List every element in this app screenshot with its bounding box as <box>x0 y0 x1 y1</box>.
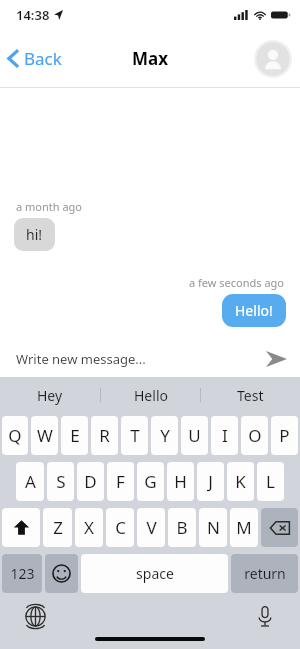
button[interactable]: space <box>81 554 228 593</box>
button[interactable]: H <box>167 462 194 501</box>
button[interactable]: Send <box>261 344 291 374</box>
button[interactable]: F <box>107 462 134 501</box>
button[interactable]: X <box>75 508 103 547</box>
staticText: Back <box>24 47 62 70</box>
staticText: X <box>84 516 94 539</box>
button[interactable]: Y <box>151 416 178 455</box>
staticText: S <box>56 470 66 493</box>
button[interactable]: U <box>181 416 208 455</box>
button[interactable]: P <box>271 416 298 455</box>
button[interactable]: Test <box>201 377 300 413</box>
staticText: A <box>25 470 36 493</box>
staticText: G <box>144 470 157 493</box>
button[interactable]: K <box>227 462 254 501</box>
button[interactable]: G <box>137 462 164 501</box>
staticText: P <box>279 424 290 447</box>
button[interactable]: L <box>257 462 284 501</box>
staticText: V <box>146 516 157 539</box>
staticText: K <box>235 470 246 493</box>
button[interactable]: D <box>77 462 104 501</box>
button[interactable]: E <box>61 416 88 455</box>
staticText: E <box>70 424 80 447</box>
staticText: L <box>266 470 275 493</box>
staticText: J <box>208 470 213 493</box>
staticText: Hello! <box>235 301 273 320</box>
staticText: Hello <box>134 386 168 405</box>
button[interactable]: J <box>197 462 224 501</box>
button[interactable]: R <box>91 416 118 455</box>
button[interactable]: Change keyboard language <box>20 601 50 631</box>
staticText: C <box>115 516 126 539</box>
button[interactable]: Hey <box>0 377 100 413</box>
staticText: B <box>176 516 188 539</box>
staticText: T <box>130 424 140 447</box>
staticText: 123 <box>10 564 35 583</box>
button[interactable]: T <box>121 416 148 455</box>
button[interactable]: Back <box>0 41 72 76</box>
staticText: a few seconds ago <box>189 275 284 290</box>
staticText: W <box>37 424 53 447</box>
button[interactable]: O <box>241 416 268 455</box>
button[interactable]: Emoji <box>45 554 78 593</box>
button[interactable]: I <box>211 416 238 455</box>
button[interactable]: C <box>106 508 134 547</box>
staticText: H <box>174 470 187 493</box>
staticText: hi! <box>26 225 43 244</box>
button[interactable]: W <box>31 416 58 455</box>
staticText: I <box>222 424 228 447</box>
staticText: Test <box>237 386 264 405</box>
staticText: F <box>116 470 125 493</box>
staticText: O <box>248 424 262 447</box>
staticText: return <box>244 564 286 583</box>
button[interactable]: B <box>168 508 196 547</box>
button[interactable]: Shift <box>2 508 40 547</box>
button[interactable]: Z <box>43 508 72 547</box>
button[interactable]: Backspace <box>261 508 298 547</box>
staticText: Max <box>132 47 169 70</box>
button[interactable]: V <box>137 508 165 547</box>
button[interactable]: Q <box>2 416 28 455</box>
staticText: U <box>188 424 201 447</box>
staticText: Q <box>8 424 22 447</box>
staticText: space <box>136 564 174 583</box>
button[interactable]: Hello <box>101 377 200 413</box>
button[interactable]: Hello! <box>222 294 286 327</box>
staticText: 14:38 <box>16 6 50 24</box>
staticText: Hey <box>37 386 63 405</box>
button[interactable]: return <box>231 554 298 593</box>
staticText: Z <box>53 516 63 539</box>
staticText: R <box>99 424 110 447</box>
staticText: a month ago <box>16 199 82 214</box>
staticText: Y <box>160 424 170 447</box>
button[interactable]: Write new message... <box>16 350 146 368</box>
button[interactable]: 123 <box>2 554 42 593</box>
button[interactable]: A <box>16 462 44 501</box>
staticText: N <box>207 516 220 539</box>
staticText: M <box>236 516 252 539</box>
button[interactable]: N <box>199 508 227 547</box>
button[interactable]: S <box>47 462 74 501</box>
button[interactable]: hi! <box>14 218 55 251</box>
staticText: D <box>84 470 97 493</box>
button[interactable]: Contact profile <box>254 40 292 78</box>
button[interactable]: M <box>230 508 258 547</box>
button[interactable]: Dictate <box>250 601 280 631</box>
